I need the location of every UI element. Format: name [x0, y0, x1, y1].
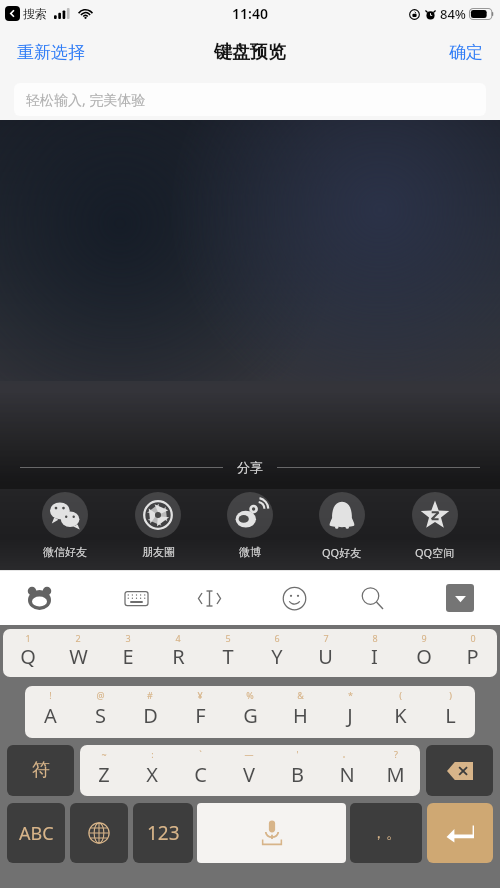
- button[interactable]: @: [75, 686, 125, 738]
- staticText: L: [445, 702, 456, 729]
- staticText: @: [96, 689, 105, 701]
- button[interactable]: (: [375, 686, 425, 738]
- staticText: 朋友圈: [142, 545, 175, 559]
- button[interactable]: Hide keyboard: [446, 584, 474, 612]
- button[interactable]: `: [176, 745, 224, 796]
- staticText: (: [399, 689, 402, 701]
- staticText: ): [449, 689, 452, 701]
- staticText: ?: [394, 748, 398, 760]
- button[interactable]: Baidu input method: [22, 581, 56, 615]
- button[interactable]: Switch language: [70, 803, 128, 863]
- staticText: ABC: [19, 821, 54, 846]
- staticText: 9: [421, 632, 427, 644]
- staticText: #: [147, 689, 153, 701]
- button[interactable]: Voice input: [197, 803, 346, 863]
- button[interactable]: 2: [53, 629, 103, 677]
- button[interactable]: ，。: [350, 803, 422, 863]
- button[interactable]: 确定: [432, 30, 500, 75]
- staticText: K: [394, 702, 407, 729]
- staticText: Y: [271, 643, 283, 670]
- staticText: &: [297, 689, 304, 701]
- button[interactable]: 9: [399, 629, 448, 677]
- button[interactable]: 7: [301, 629, 350, 677]
- button[interactable]: &: [275, 686, 325, 738]
- button[interactable]: QQ好友: [315, 492, 369, 560]
- button[interactable]: 6: [252, 629, 301, 677]
- staticText: 分享: [237, 459, 263, 475]
- button[interactable]: —: [224, 745, 273, 796]
- staticText: 3: [125, 632, 131, 644]
- staticText: 6: [274, 632, 280, 644]
- button[interactable]: Backspace: [426, 745, 493, 796]
- staticText: QQ好友: [322, 545, 362, 560]
- staticText: F: [195, 702, 206, 729]
- button[interactable]: 0: [448, 629, 497, 677]
- staticText: B: [291, 761, 304, 788]
- button[interactable]: Search: [355, 581, 389, 615]
- staticText: J: [347, 702, 353, 729]
- button[interactable]: *: [325, 686, 375, 738]
- button[interactable]: 朋友圈: [131, 492, 185, 559]
- button[interactable]: %: [225, 686, 275, 738]
- button[interactable]: ¥: [175, 686, 225, 738]
- staticText: 0: [470, 632, 476, 644]
- staticText: ¥: [197, 689, 203, 701]
- staticText: Q: [20, 643, 36, 670]
- staticText: ~: [101, 748, 107, 760]
- staticText: I: [371, 643, 378, 670]
- staticText: !: [49, 689, 52, 701]
- staticText: R: [172, 643, 185, 670]
- button[interactable]: 微博: [223, 492, 277, 559]
- button[interactable]: Keyboard layout: [119, 581, 153, 615]
- button[interactable]: 1: [3, 629, 53, 677]
- button[interactable]: ABC: [7, 803, 65, 863]
- staticText: W: [69, 643, 88, 670]
- button[interactable]: 重新选择: [0, 30, 102, 75]
- staticText: 84%: [440, 5, 466, 23]
- staticText: —: [244, 748, 254, 760]
- button[interactable]: QQ空间: [408, 492, 462, 560]
- staticText: 5: [225, 632, 231, 644]
- staticText: QQ空间: [415, 545, 455, 560]
- button[interactable]: ): [425, 686, 475, 738]
- button[interactable]: #: [125, 686, 175, 738]
- staticText: U: [318, 643, 333, 670]
- staticText: 符: [32, 759, 50, 782]
- button[interactable]: 微信好友: [38, 492, 92, 559]
- button[interactable]: 符: [7, 745, 74, 796]
- staticText: 1: [25, 632, 31, 644]
- button[interactable]: 3: [103, 629, 153, 677]
- button[interactable]: Enter: [427, 803, 493, 863]
- staticText: `: [199, 748, 202, 760]
- staticText: H: [293, 702, 308, 729]
- staticText: ，。: [371, 824, 401, 843]
- staticText: 7: [323, 632, 329, 644]
- staticText: 11:40: [232, 4, 268, 23]
- button[interactable]: 8: [350, 629, 399, 677]
- staticText: S: [95, 702, 106, 729]
- staticText: 键盘预览: [214, 41, 286, 64]
- staticText: 重新选择: [17, 42, 85, 63]
- button[interactable]: 123: [133, 803, 193, 863]
- staticText: A: [44, 702, 57, 729]
- button[interactable]: !: [25, 686, 75, 738]
- staticText: P: [466, 643, 479, 670]
- staticText: V: [243, 761, 255, 788]
- button[interactable]: :: [128, 745, 176, 796]
- staticText: 8: [372, 632, 378, 644]
- staticText: 确定: [449, 42, 483, 63]
- staticText: %: [246, 689, 254, 701]
- button[interactable]: Move cursor: [192, 581, 226, 615]
- button[interactable]: 。: [322, 745, 371, 796]
- button[interactable]: Emoji: [277, 581, 311, 615]
- staticText: M: [386, 761, 405, 788]
- staticText: G: [243, 702, 258, 729]
- button[interactable]: 5: [203, 629, 252, 677]
- button[interactable]: ~: [80, 745, 128, 796]
- staticText: *: [348, 689, 353, 701]
- button[interactable]: 轻松输入, 完美体验: [14, 83, 486, 116]
- button[interactable]: ?: [371, 745, 420, 796]
- button[interactable]: 4: [153, 629, 203, 677]
- staticText: X: [146, 761, 158, 788]
- button[interactable]: ': [273, 745, 322, 796]
